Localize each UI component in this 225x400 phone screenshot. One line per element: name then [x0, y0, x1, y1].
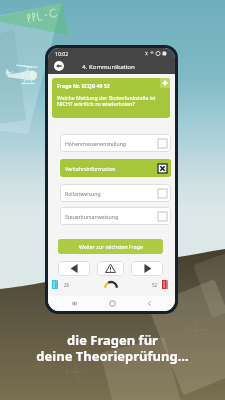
button[interactable]: Report question	[97, 261, 124, 276]
staticText: Höhenmessereinstellung	[65, 140, 158, 147]
button[interactable]: Steuerkursanweisung	[60, 207, 171, 225]
staticText: 52	[152, 282, 158, 288]
staticText: Verkehrsinformation	[65, 165, 158, 172]
button[interactable]: Rollanweisung	[60, 184, 171, 202]
button[interactable]: Recents	[62, 297, 86, 310]
staticText: die Fragen für deine Theorieprüfung...	[0, 331, 225, 364]
staticText: Rollanweisung	[65, 190, 158, 197]
button[interactable]: Home	[100, 297, 124, 310]
button[interactable]: Höhenmessereinstellung	[60, 134, 171, 152]
button[interactable]: Bookmark	[160, 78, 170, 88]
button[interactable]: Next question	[131, 261, 163, 276]
button[interactable]: Frage Nr. ECQB 40 52	[52, 78, 170, 118]
button[interactable]: Weiter zur nächsten Frage	[58, 239, 163, 254]
staticText: 10:02	[55, 50, 69, 57]
staticText: Welche Meldung der Bodenfunkstelle ist N…	[57, 94, 157, 108]
staticText: 4. Kommunikation	[82, 62, 135, 70]
button[interactable]: Previous question	[58, 261, 90, 276]
staticText: 26	[64, 282, 70, 288]
button[interactable]: Back	[53, 60, 65, 72]
button[interactable]: Back	[137, 297, 161, 310]
staticText: Frage Nr. ECQB 40 52	[57, 82, 110, 89]
staticText: Weiter zur nächsten Frage	[79, 243, 143, 250]
button[interactable]: Verkehrsinformation	[60, 159, 171, 177]
staticText: Steuerkursanweisung	[65, 213, 158, 220]
